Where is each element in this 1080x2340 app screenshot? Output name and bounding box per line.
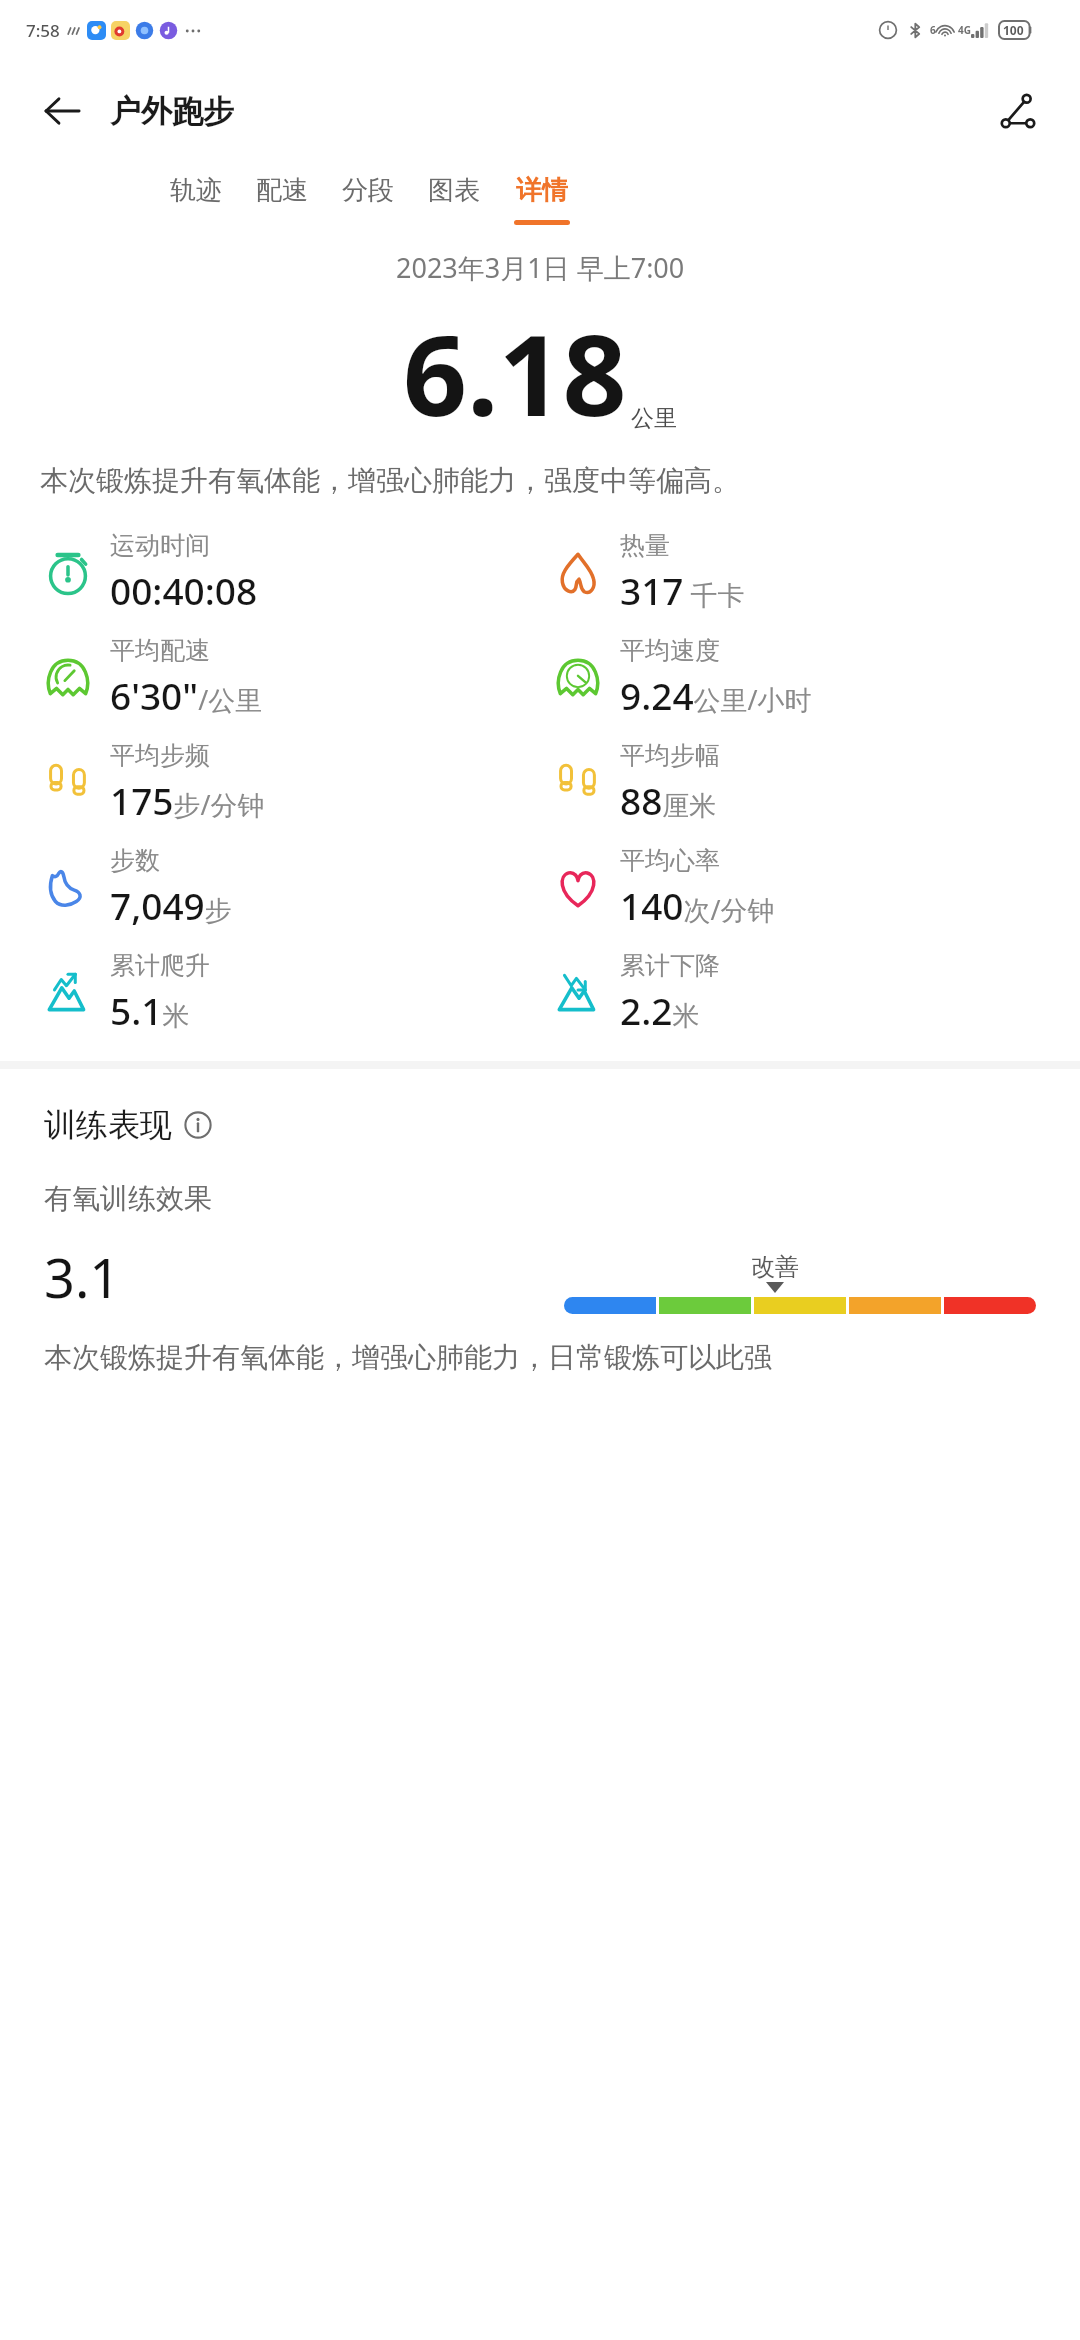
staticText: 6 — [930, 23, 936, 37]
button[interactable]: 轨迹 — [170, 170, 222, 229]
button[interactable]: 平均配速 — [42, 625, 540, 730]
staticText: 详情 — [516, 174, 568, 207]
button[interactable]: Share — [990, 83, 1046, 139]
staticText: 分段 — [342, 174, 394, 207]
staticText: 6.18 — [403, 296, 627, 449]
staticText: 2.2米 — [620, 985, 700, 1035]
staticText: 本次锻炼提升有氧体能，增强心肺能力，强度中等偏高。 — [40, 463, 1040, 498]
button[interactable]: 累计下降 — [552, 940, 1080, 1045]
staticText: 平均步频 — [110, 740, 210, 771]
staticText: 平均步幅 — [620, 740, 720, 771]
button[interactable]: 平均速度 — [552, 625, 1080, 730]
button[interactable]: 平均步幅 — [552, 730, 1080, 835]
button[interactable]: Back — [34, 83, 90, 139]
staticText: 88厘米 — [620, 775, 717, 825]
staticText: 有氧训练效果 — [44, 1181, 212, 1216]
staticText: 改善 — [751, 1252, 799, 1282]
staticText: 140次/分钟 — [620, 880, 775, 930]
staticText: 户外跑步 — [110, 92, 234, 131]
staticText: 7,049步 — [110, 880, 232, 930]
button[interactable]: 平均心率 — [552, 835, 1080, 940]
button[interactable]: 平均步频 — [42, 730, 540, 835]
staticText: 平均速度 — [620, 635, 720, 666]
staticText: 00:40:08 — [110, 565, 258, 615]
staticText: 5.1米 — [110, 985, 190, 1035]
staticText: 本次锻炼提升有氧体能，增强心肺能力，日常锻炼可以此强 — [44, 1340, 772, 1375]
staticText: 累计下降 — [620, 950, 720, 981]
staticText: 步数 — [110, 845, 160, 876]
staticText: 公里 — [631, 404, 677, 433]
staticText: 100 — [1003, 22, 1024, 38]
button[interactable]: 运动时间 — [42, 520, 540, 625]
staticText: 累计爬升 — [110, 950, 210, 981]
staticText: 配速 — [256, 174, 308, 207]
staticText: 运动时间 — [110, 530, 210, 561]
staticText: 平均配速 — [110, 635, 210, 666]
staticText: 平均心率 — [620, 845, 720, 876]
button[interactable]: 训练表现 — [44, 1105, 212, 1145]
button[interactable]: 步数 — [42, 835, 540, 940]
staticText: 图表 — [428, 174, 480, 207]
button[interactable]: 热量 — [552, 520, 1080, 625]
staticText: 6'30"/公里 — [110, 670, 263, 720]
staticText: 热量 — [620, 530, 670, 561]
staticText: 175步/分钟 — [110, 775, 265, 825]
button[interactable]: 累计爬升 — [42, 940, 540, 1045]
staticText: 2023年3月1日 早上7:00 — [396, 249, 685, 286]
staticText: 9.24公里/小时 — [620, 670, 812, 720]
button[interactable]: 详情 — [514, 170, 570, 229]
staticText: 4G — [958, 23, 971, 37]
staticText: 轨迹 — [170, 174, 222, 207]
staticText: 3.1 — [44, 1240, 121, 1314]
staticText: 训练表现 — [44, 1105, 172, 1145]
staticText: 317 千卡 — [620, 565, 745, 615]
button[interactable]: 图表 — [428, 170, 480, 229]
staticText: 7:58 — [26, 19, 60, 42]
other: Info — [184, 1111, 212, 1139]
button[interactable]: 分段 — [342, 170, 394, 229]
button[interactable]: 配速 — [256, 170, 308, 229]
